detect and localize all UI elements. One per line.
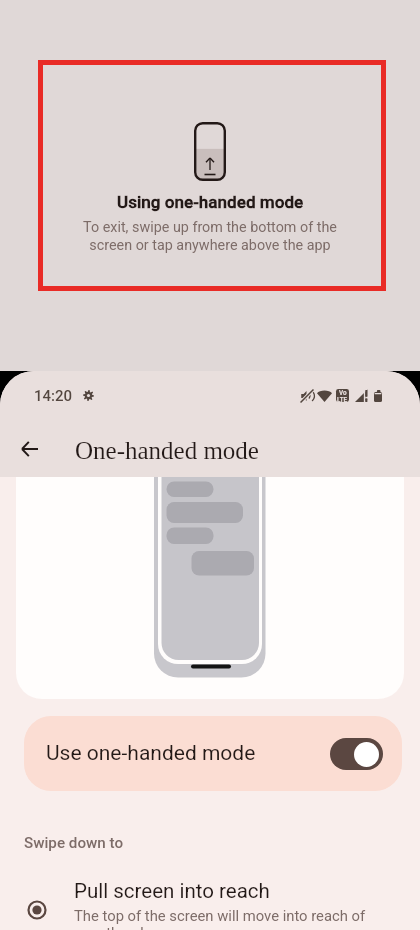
staticText: Pull screen into reach: [74, 879, 270, 903]
button[interactable]: Use one-handed mode: [24, 716, 402, 791]
staticText: Vo: [339, 389, 347, 396]
staticText: The top of the screen will move into rea…: [74, 907, 366, 930]
staticText: LTE: [337, 396, 348, 402]
staticText: Use one-handed mode: [46, 741, 256, 766]
button[interactable]: [16, 477, 404, 699]
button[interactable]: Pull screen into reach: [0, 879, 420, 930]
button[interactable]: Back: [9, 429, 49, 469]
staticText: One-handed mode: [75, 437, 259, 465]
staticText: Swipe down to: [24, 834, 124, 852]
staticText: 14:20: [34, 387, 73, 405]
staticText: Using one-handed mode: [117, 192, 304, 212]
staticText: To exit, swipe up from the bottom of the…: [83, 219, 337, 254]
